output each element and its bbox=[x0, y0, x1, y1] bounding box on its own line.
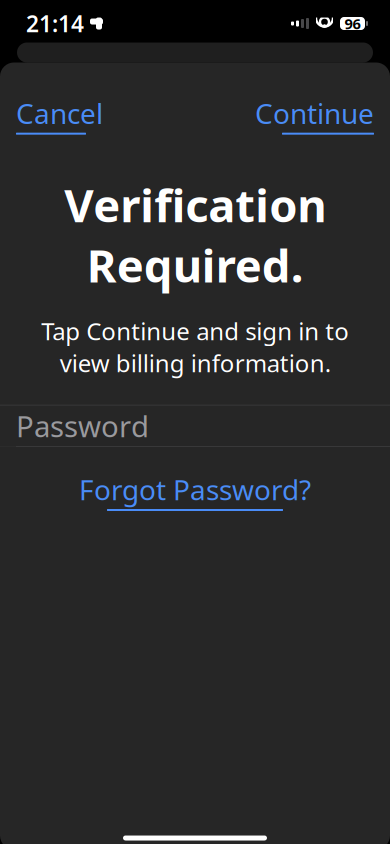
staticText: Continue bbox=[255, 94, 374, 132]
button[interactable]: Cancel bbox=[0, 84, 119, 145]
staticText: 96 bbox=[344, 14, 360, 33]
button[interactable]: Continue bbox=[239, 84, 390, 145]
staticText: Password bbox=[16, 406, 149, 445]
button[interactable]: Password bbox=[0, 405, 390, 446]
staticText: Tap Continue and sign in to view billing… bbox=[41, 315, 349, 379]
button[interactable]: Forgot Password? bbox=[79, 447, 311, 521]
staticText: Verification Required. bbox=[64, 175, 326, 295]
staticText: 21:14 bbox=[26, 8, 84, 38]
staticText: Cancel bbox=[16, 94, 103, 132]
staticText: Forgot Password? bbox=[79, 471, 311, 508]
